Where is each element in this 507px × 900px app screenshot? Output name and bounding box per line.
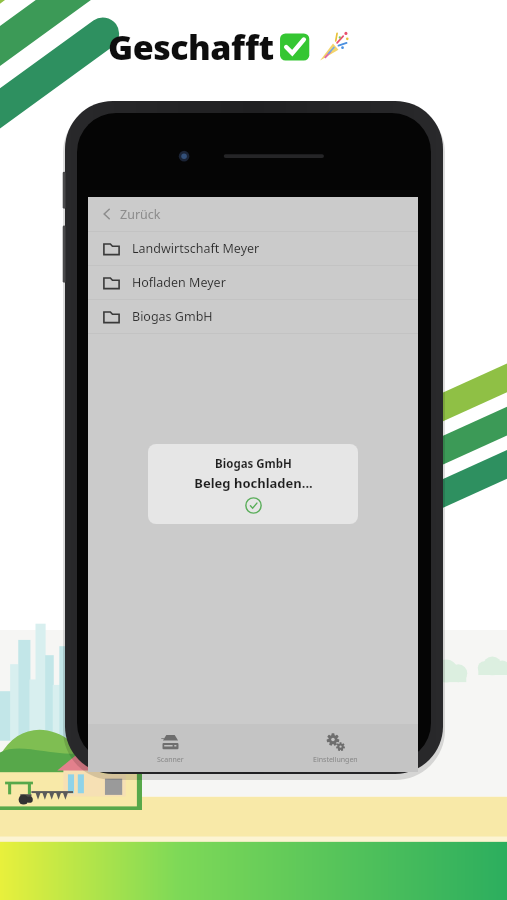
staticText: Beleg hochladen... <box>194 474 313 492</box>
staticText: Zurück <box>120 206 161 223</box>
other: Zurück <box>100 207 114 221</box>
button[interactable]: Scanner <box>88 728 253 769</box>
button[interactable]: Hofladen Meyer <box>88 266 418 299</box>
staticText: Scanner <box>157 755 184 765</box>
button[interactable]: Landwirtschaft Meyer <box>88 232 418 265</box>
staticText: Landwirtschaft Meyer <box>132 240 260 257</box>
staticText: Hofladen Meyer <box>132 274 226 291</box>
button[interactable]: Einstellungen <box>253 728 418 769</box>
staticText: Biogas GmbH <box>215 456 292 472</box>
staticText: Einstellungen <box>313 755 358 765</box>
button[interactable]: Biogas GmbH <box>88 300 418 333</box>
staticText: Geschafft <box>108 24 274 70</box>
staticText: Biogas GmbH <box>132 308 213 325</box>
button[interactable]: Zurück <box>88 197 418 231</box>
